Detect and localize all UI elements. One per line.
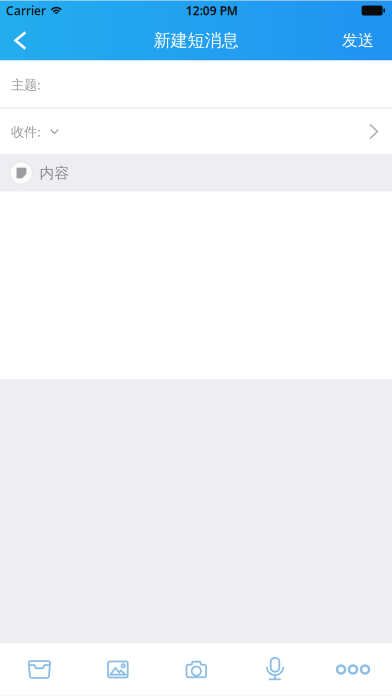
button[interactable]: 收件: xyxy=(0,108,392,154)
staticText: 发送 xyxy=(342,31,374,50)
button[interactable]: Photos xyxy=(79,643,157,695)
button[interactable]: Camera xyxy=(157,643,236,695)
staticText: 收件: xyxy=(11,123,41,140)
button[interactable]: More xyxy=(314,643,392,695)
staticText: 12:09 PM xyxy=(186,2,238,18)
button[interactable]: Voice message xyxy=(236,643,314,695)
staticText: Carrier xyxy=(6,2,46,18)
staticText: 内容 xyxy=(39,164,69,182)
button[interactable]: Drafts xyxy=(0,643,79,695)
staticText: 主题: xyxy=(11,76,41,93)
button[interactable]: Back xyxy=(0,20,41,60)
staticText: 新建短消息 xyxy=(153,30,238,51)
button[interactable]: 发送 xyxy=(328,20,392,60)
